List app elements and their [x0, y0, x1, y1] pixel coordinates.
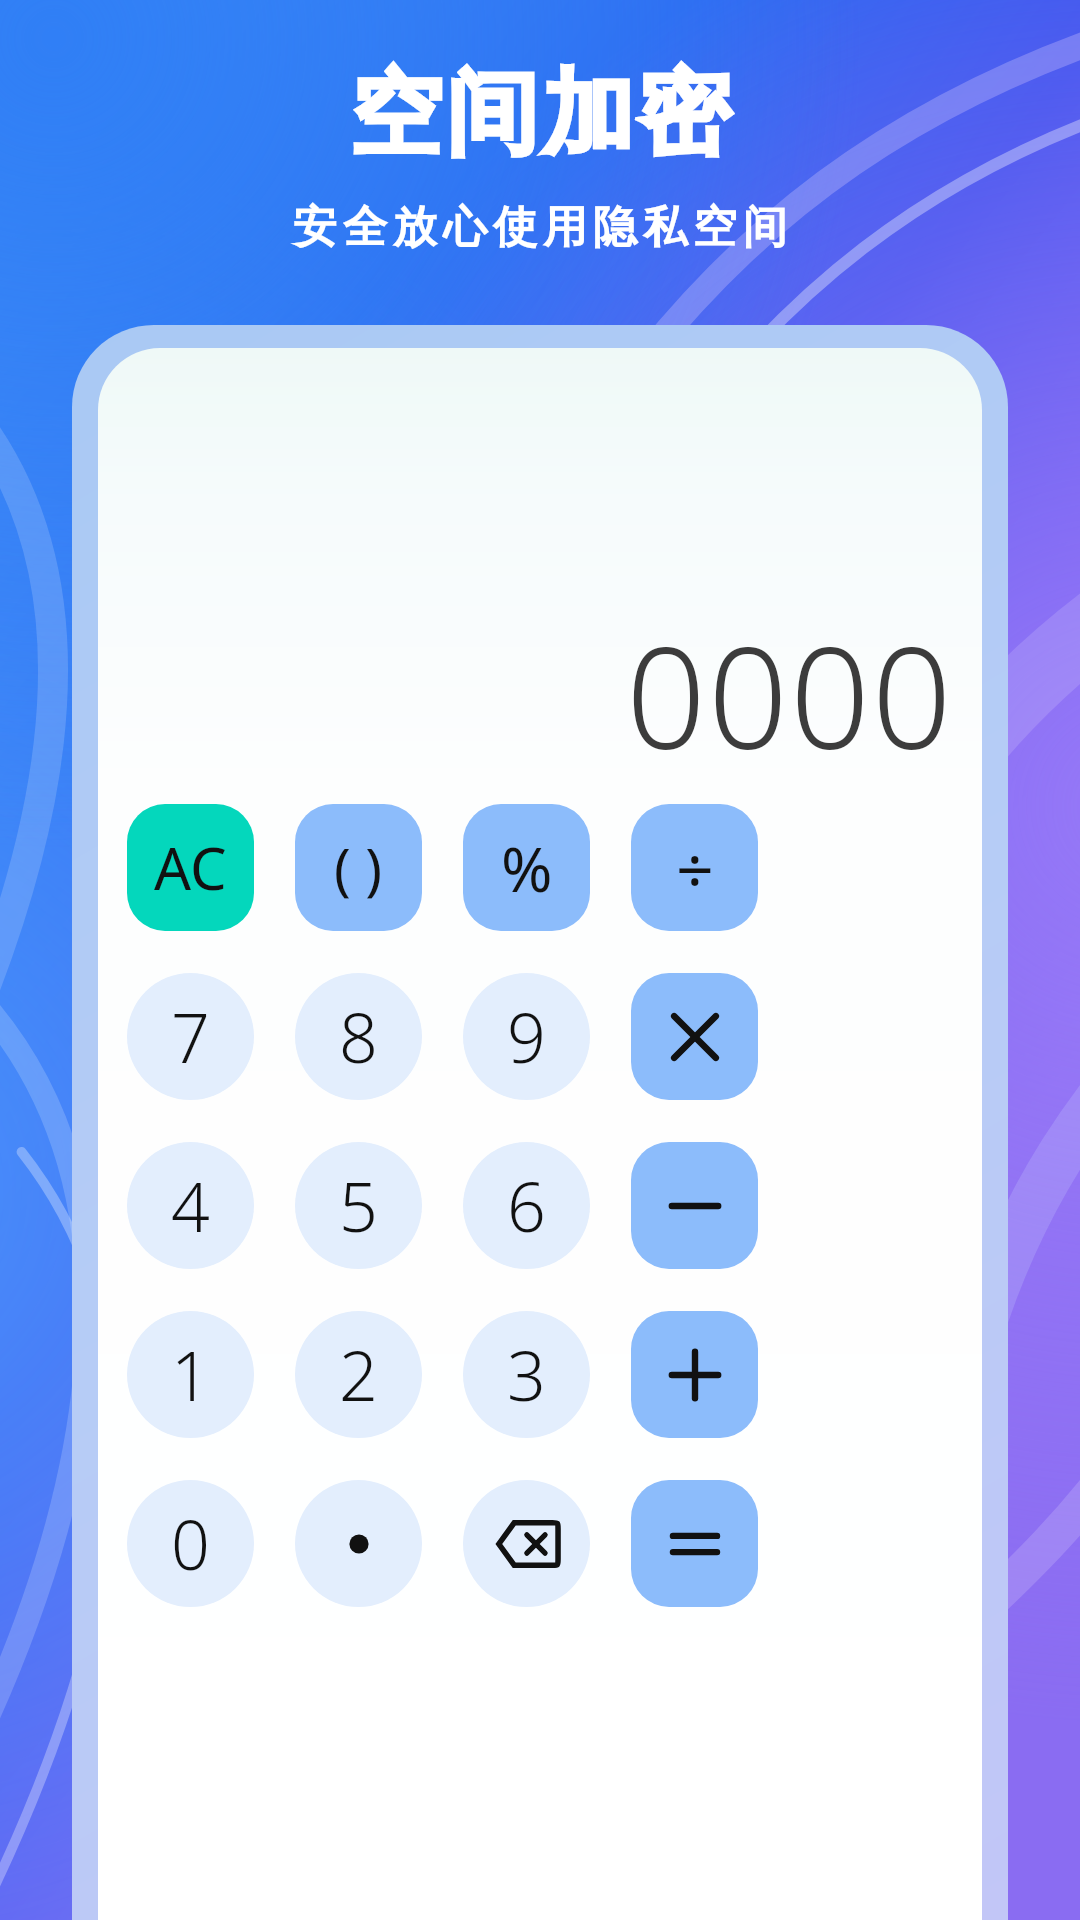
button[interactable]: 1 [127, 1311, 254, 1438]
button[interactable]: Equals [631, 1480, 758, 1607]
staticText: 7 [171, 990, 210, 1083]
staticText: ( ) [334, 830, 383, 906]
button[interactable]: 0 [127, 1480, 254, 1607]
staticText: 4 [171, 1159, 210, 1252]
staticText: 9 [507, 990, 546, 1083]
button[interactable]: Backspace [463, 1480, 590, 1607]
button[interactable]: 4 [127, 1142, 254, 1269]
staticText: 1 [171, 1328, 210, 1421]
button[interactable]: 3 [463, 1311, 590, 1438]
staticText: % [501, 826, 553, 910]
button[interactable]: 7 [127, 973, 254, 1100]
button[interactable]: Decimal point [295, 1480, 422, 1607]
staticText: 空间加密 [348, 56, 732, 172]
staticText: ÷ [676, 823, 714, 913]
button[interactable]: ÷ [631, 804, 758, 931]
button[interactable]: 8 [295, 973, 422, 1100]
staticText: 安全放心使用隐私空间 [290, 200, 790, 255]
staticText: 8 [339, 990, 378, 1083]
staticText: AC [154, 828, 227, 907]
button[interactable]: Plus [631, 1311, 758, 1438]
button[interactable]: 9 [463, 973, 590, 1100]
button[interactable]: AC [127, 804, 254, 931]
staticText: 5 [339, 1159, 378, 1252]
button[interactable]: 2 [295, 1311, 422, 1438]
button[interactable]: % [463, 804, 590, 931]
staticText: 0 [171, 1497, 210, 1590]
button[interactable]: ( ) [295, 804, 422, 931]
staticText: 3 [507, 1328, 546, 1421]
button[interactable]: 6 [463, 1142, 590, 1269]
staticText: 6 [507, 1159, 546, 1252]
staticText: 2 [339, 1328, 378, 1421]
button[interactable]: 5 [295, 1142, 422, 1269]
button[interactable]: Minus [631, 1142, 758, 1269]
button[interactable]: Multiply [631, 973, 758, 1100]
staticText: 0000 [626, 599, 954, 790]
